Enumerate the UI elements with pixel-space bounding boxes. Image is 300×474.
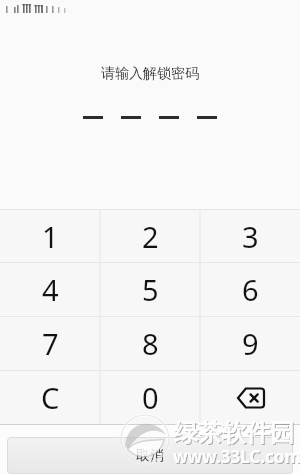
staticText: 8 [142, 324, 159, 363]
button[interactable]: 1 [0, 210, 100, 262]
staticText: 9 [242, 324, 259, 363]
staticText: 绿茶软件园 [175, 419, 295, 449]
button[interactable]: 2 [100, 210, 200, 262]
staticText: www.33LC.com [174, 446, 300, 469]
staticText: 6 [242, 270, 259, 309]
button[interactable]: 取消 [7, 437, 293, 474]
staticText: 请输入解锁密码 [0, 65, 300, 83]
button[interactable]: 4 [0, 263, 100, 316]
staticText: 绿茶软件园 [174, 418, 294, 448]
button[interactable]: 8 [100, 317, 200, 370]
staticText: 0 [142, 378, 159, 417]
staticText: C [41, 378, 60, 417]
staticText: 2 [142, 217, 159, 256]
button[interactable]: Backspace [200, 371, 300, 424]
staticText: www.33LC.com [173, 445, 300, 468]
staticText: 5 [142, 270, 159, 309]
staticText: 取消 [136, 447, 164, 465]
button[interactable]: 5 [100, 263, 200, 316]
staticText: 3 [242, 217, 259, 256]
staticText: 4 [42, 270, 59, 309]
button[interactable]: 7 [0, 317, 100, 370]
staticText: 7 [42, 324, 59, 363]
button[interactable]: C [0, 371, 100, 424]
button[interactable]: 9 [200, 317, 300, 370]
button[interactable]: 0 [100, 371, 200, 424]
staticText: 1 [42, 217, 59, 256]
button[interactable]: Backspace [237, 386, 265, 410]
button[interactable]: 6 [200, 263, 300, 316]
button[interactable]: 3 [200, 210, 300, 262]
